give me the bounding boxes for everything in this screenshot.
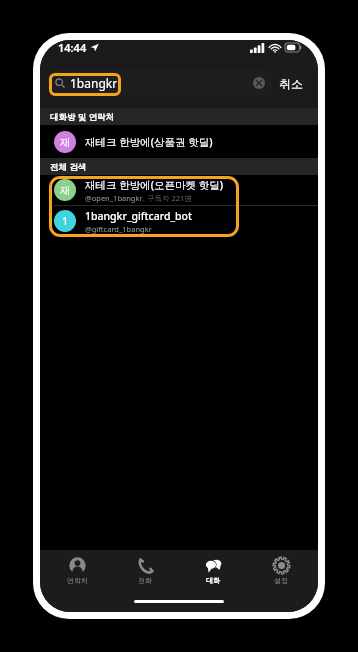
- staticText: 대화: [206, 576, 220, 585]
- staticText: 1bangkr: [70, 75, 118, 91]
- button[interactable]: 설정: [250, 550, 312, 592]
- staticText: 연락처: [67, 576, 88, 585]
- button[interactable]: 1bangkr: [48, 70, 272, 96]
- staticText: 전체 검색: [50, 161, 87, 173]
- staticText: 1bangkr_giftcard_bot: [85, 209, 193, 223]
- staticText: , 구독자 221명: [143, 193, 192, 203]
- button[interactable]: 연락처: [46, 550, 108, 592]
- staticText: 재: [60, 184, 70, 197]
- staticText: 재: [60, 136, 70, 149]
- staticText: 취소: [279, 76, 303, 91]
- staticText: @open_1bangkr: [85, 193, 143, 203]
- button[interactable]: 대화: [182, 550, 244, 592]
- button[interactable]: 재: [40, 125, 318, 158]
- button[interactable]: Clear search: [253, 77, 265, 89]
- staticText: @giftcard_1bangkr: [85, 224, 152, 234]
- staticText: 전화: [138, 576, 152, 585]
- staticText: 14:44: [58, 40, 87, 55]
- button[interactable]: 재: [40, 175, 318, 205]
- staticText: 재테크 한방에(상품권 핫딜): [85, 135, 213, 149]
- staticText: 설정: [274, 576, 288, 585]
- button[interactable]: 취소: [272, 72, 310, 95]
- button[interactable]: 전화: [114, 550, 176, 592]
- staticText: 1: [62, 214, 68, 228]
- button[interactable]: 1: [40, 206, 318, 236]
- staticText: 대화방 및 연락처: [50, 111, 114, 123]
- staticText: 재테크 한방에(오픈마켓 핫딜): [85, 178, 224, 192]
